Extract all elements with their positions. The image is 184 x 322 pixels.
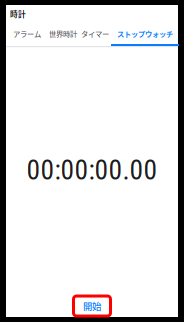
staticText: 開始 bbox=[83, 299, 101, 313]
staticText: 世界時計 bbox=[49, 28, 77, 39]
button[interactable]: タイマー bbox=[79, 23, 111, 46]
staticText: アラーム bbox=[13, 28, 41, 39]
staticText: 00:00:00.00 bbox=[26, 154, 157, 186]
button[interactable]: 世界時計 bbox=[47, 23, 79, 46]
button[interactable]: アラーム bbox=[7, 23, 47, 46]
staticText: ストップウォッチ bbox=[117, 28, 173, 39]
button[interactable]: ストップウォッチ bbox=[111, 23, 179, 46]
staticText: 時計 bbox=[10, 8, 26, 20]
staticText: タイマー bbox=[81, 28, 109, 39]
button[interactable]: 開始 bbox=[73, 296, 110, 316]
